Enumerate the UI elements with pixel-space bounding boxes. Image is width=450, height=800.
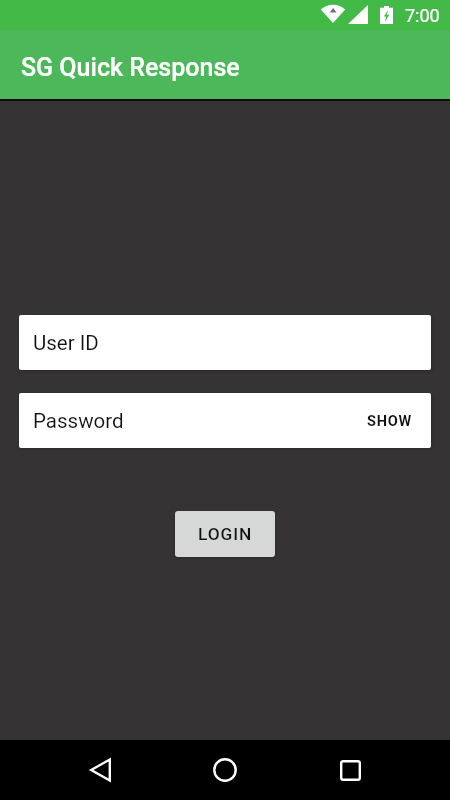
button[interactable]: Recents <box>325 745 375 795</box>
button[interactable]: Back <box>75 745 125 795</box>
staticText: User ID <box>33 331 99 355</box>
button[interactable]: Home <box>200 745 250 795</box>
staticText: SHOW <box>367 412 412 429</box>
staticText: Password <box>33 409 124 433</box>
button[interactable]: SHOW <box>348 402 431 439</box>
button[interactable]: User ID <box>19 315 431 370</box>
staticText: LOGIN <box>198 524 253 544</box>
button[interactable]: Password <box>19 393 431 448</box>
staticText: SG Quick Response <box>21 53 240 82</box>
staticText: 7:00 <box>405 5 440 26</box>
button[interactable]: LOGIN <box>175 511 275 557</box>
